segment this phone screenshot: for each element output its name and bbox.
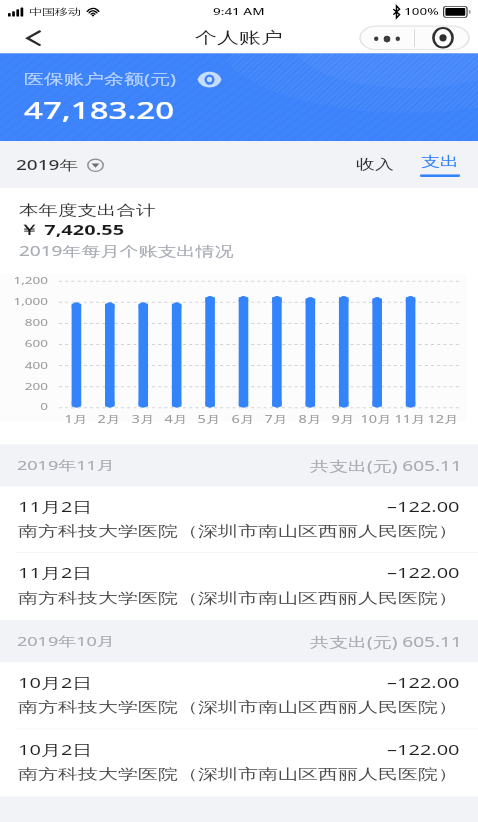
staticText: 9:41 AM: [213, 5, 265, 18]
staticText: 6月: [223, 411, 263, 425]
staticText: 400: [0, 359, 48, 372]
staticText: 南方科技大学医院（深圳市南山区西丽人民医院）: [18, 765, 458, 783]
staticText: 7月: [256, 411, 296, 425]
staticText: 1,000: [0, 295, 48, 308]
staticText: 47,183.20: [24, 94, 175, 126]
staticText: –122.00: [387, 739, 460, 759]
staticText: 南方科技大学医院（深圳市南山区西丽人民医院）: [18, 698, 458, 716]
staticText: 12月: [423, 411, 463, 425]
staticText: 9月: [323, 411, 363, 425]
button[interactable]: Close mini program: [415, 25, 470, 50]
staticText: 11月2日: [18, 563, 93, 582]
staticText: 0: [0, 400, 48, 413]
staticText: 中国移动: [29, 6, 81, 17]
staticText: 本年度支出合计: [19, 202, 156, 220]
staticText: 11月: [390, 411, 430, 425]
button[interactable]: 支出: [414, 151, 466, 179]
staticText: 医保账户余额(元): [24, 69, 176, 88]
staticText: 南方科技大学医院（深圳市南山区西丽人民医院）: [18, 523, 458, 541]
staticText: 2019年: [16, 155, 79, 174]
staticText: 11月2日: [18, 497, 93, 516]
staticText: 3月: [123, 411, 163, 425]
staticText: 200: [0, 379, 48, 392]
staticText: 支出: [421, 153, 459, 171]
staticText: 2月: [89, 411, 129, 425]
button[interactable]: 10月2日: [0, 729, 478, 796]
staticText: 1,200: [0, 274, 48, 287]
staticText: 10月2日: [18, 672, 93, 692]
staticText: 1月: [56, 411, 96, 425]
staticText: 10月: [356, 411, 396, 425]
staticText: 2019年11月: [17, 456, 115, 474]
staticText: –122.00: [387, 672, 460, 692]
staticText: 5月: [189, 411, 229, 425]
staticText: 南方科技大学医院（深圳市南山区西丽人民医院）: [18, 589, 458, 607]
staticText: 10月2日: [18, 739, 93, 759]
staticText: 个人账户: [195, 28, 283, 48]
staticText: 共支出(元) 605.11: [310, 456, 462, 475]
button[interactable]: Back: [16, 23, 50, 53]
button[interactable]: 收入: [348, 150, 402, 179]
staticText: 8月: [290, 411, 330, 425]
staticText: ￥ 7,420.55: [19, 220, 125, 239]
staticText: 2019年10月: [17, 632, 115, 650]
staticText: 2019年每月个账支出情况: [19, 241, 234, 260]
staticText: 800: [0, 316, 48, 329]
staticText: 4月: [156, 411, 196, 425]
staticText: 600: [0, 337, 48, 350]
button[interactable]: 2019年: [0, 150, 112, 180]
button[interactable]: Toggle balance visibility: [196, 72, 223, 86]
staticText: 100%: [404, 5, 439, 18]
staticText: –122.00: [387, 563, 460, 582]
button[interactable]: More options: [359, 25, 414, 50]
button[interactable]: 10月2日: [0, 662, 478, 729]
staticText: –122.00: [387, 497, 460, 516]
staticText: 共支出(元) 605.11: [310, 632, 462, 651]
button[interactable]: 11月2日: [0, 487, 478, 553]
staticText: 收入: [356, 156, 394, 173]
button[interactable]: 11月2日: [0, 553, 478, 620]
